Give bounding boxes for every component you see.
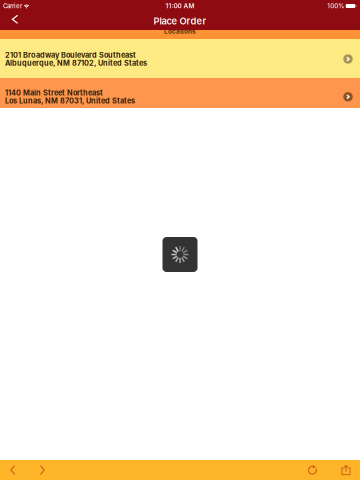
staticText: 1140 Main Street Northeast xyxy=(5,88,103,97)
staticText: Albuquerque, NM 87102, United States xyxy=(5,59,147,67)
button[interactable]: Share xyxy=(332,460,360,480)
button[interactable]: 2101 Broadway Boulevard Southeast xyxy=(0,39,360,78)
button[interactable]: 1140 Main Street Northeast xyxy=(0,78,360,108)
staticText: Carrier xyxy=(3,2,22,10)
staticText: 100% xyxy=(327,2,344,10)
staticText: 2101 Broadway Boulevard Southeast xyxy=(5,51,136,59)
staticText: Place Order xyxy=(153,15,206,27)
button[interactable]: Forward xyxy=(26,461,59,479)
button[interactable]: Reload xyxy=(293,460,332,480)
staticText: Los Lunas, NM 87031, United States xyxy=(5,96,135,105)
button[interactable]: Back xyxy=(0,461,26,479)
staticText: 11:00 AM xyxy=(165,2,194,10)
button[interactable]: Back xyxy=(3,12,27,30)
staticText: Locations xyxy=(164,28,196,35)
